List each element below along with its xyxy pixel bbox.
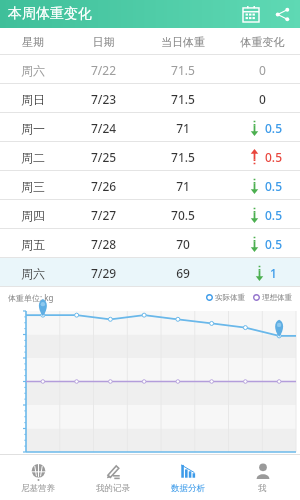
staticText: 体重变化: [225, 35, 300, 49]
button[interactable]: 周四: [0, 200, 300, 229]
staticText: 周六: [0, 266, 66, 281]
staticText: 7/28: [66, 236, 141, 252]
staticText: 周三: [0, 179, 66, 194]
staticText: 日期: [66, 35, 141, 49]
button[interactable]: Calendar: [238, 1, 264, 27]
staticText: 理想体重: [262, 293, 292, 302]
staticText: 本周体重变化: [8, 5, 92, 23]
staticText: 7/24: [66, 120, 141, 136]
staticText: 0.5: [265, 178, 282, 194]
button[interactable]: 我: [225, 454, 300, 500]
button[interactable]: 周三: [0, 171, 300, 200]
button[interactable]: 周二: [0, 142, 300, 171]
button[interactable]: 周一: [0, 113, 300, 142]
staticText: 体重单位: kg: [8, 292, 54, 303]
button[interactable]: 尼基营养: [0, 454, 75, 500]
button[interactable]: Share: [270, 2, 294, 26]
staticText: 数据分析: [171, 483, 205, 494]
button[interactable]: 周五: [0, 229, 300, 258]
staticText: 71.5: [141, 91, 225, 107]
staticText: 周日: [0, 92, 66, 107]
staticText: 71: [141, 178, 225, 194]
staticText: 尼基营养: [21, 483, 55, 494]
staticText: 0.5: [265, 149, 282, 165]
staticText: 周六: [0, 63, 66, 78]
button[interactable]: 周日: [0, 84, 300, 113]
staticText: 7/22: [66, 62, 141, 78]
staticText: 0.5: [265, 236, 282, 252]
staticText: 71.5: [141, 62, 225, 78]
staticText: 70.5: [141, 207, 225, 223]
button[interactable]: 我的记录: [75, 454, 150, 500]
staticText: 7/23: [66, 91, 141, 107]
staticText: 7/29: [66, 265, 141, 281]
staticText: 我的记录: [96, 483, 130, 494]
button[interactable]: 周六: [0, 258, 300, 287]
staticText: 实际体重: [215, 293, 245, 302]
staticText: 71: [141, 120, 225, 136]
staticText: 0: [259, 91, 266, 107]
staticText: 我: [258, 483, 267, 494]
staticText: 0.5: [265, 207, 282, 223]
staticText: 周二: [0, 150, 66, 165]
staticText: 0.5: [265, 120, 282, 136]
staticText: 周四: [0, 208, 66, 223]
staticText: 1: [270, 265, 277, 281]
staticText: 当日体重: [141, 35, 225, 49]
staticText: 69: [141, 265, 225, 281]
staticText: 星期: [0, 35, 66, 49]
staticText: 7/26: [66, 178, 141, 194]
staticText: 周一: [0, 121, 66, 136]
staticText: 71.5: [141, 149, 225, 165]
staticText: 0: [259, 62, 266, 78]
staticText: 70: [141, 236, 225, 252]
button[interactable]: 周六: [0, 55, 300, 84]
button[interactable]: 数据分析: [150, 454, 225, 500]
staticText: 7/27: [66, 207, 141, 223]
staticText: 周五: [0, 237, 66, 252]
staticText: 7/25: [66, 149, 141, 165]
